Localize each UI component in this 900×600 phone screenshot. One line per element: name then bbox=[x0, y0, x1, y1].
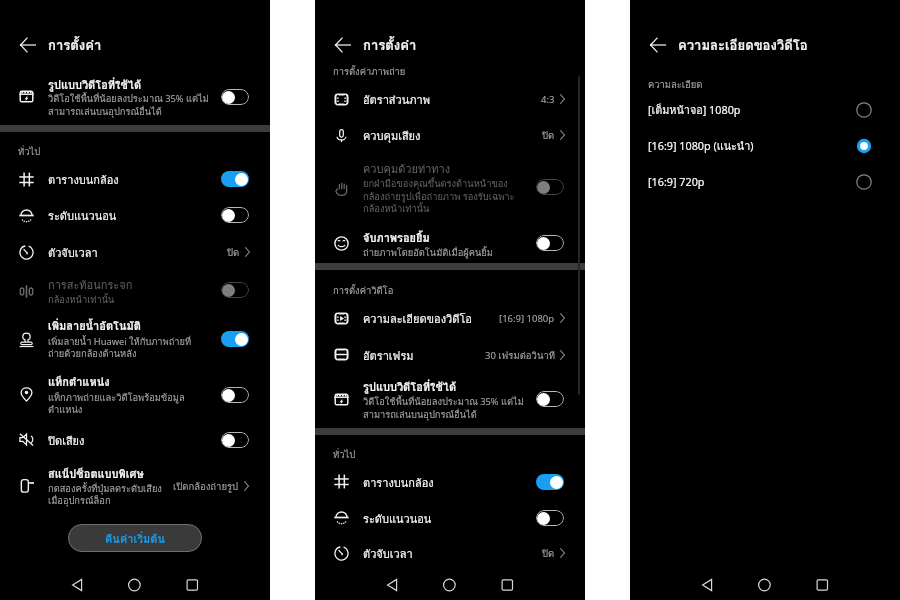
staticText: รูปแบบวิดีโอที่ใช้ได้ bbox=[48, 76, 142, 93]
staticText: ยกฝ่ามือของคุณขึ้นตรงด้านหน้าของ bbox=[363, 176, 508, 191]
staticText: ควบคุมด้วยท่าทาง bbox=[363, 160, 451, 177]
staticText: ตารางบนกล้อง bbox=[48, 171, 119, 188]
staticText: [16:9] 1080p bbox=[499, 312, 555, 325]
staticText: 30 เฟรมต่อวินาที bbox=[485, 348, 555, 363]
staticText: ปิด bbox=[227, 245, 240, 260]
staticText: [16:9] 720p bbox=[648, 174, 705, 189]
staticText: กล้องหน้าเท่านั้น bbox=[48, 292, 115, 307]
button[interactable]: Back bbox=[331, 33, 355, 57]
staticText: ควบคุมเสียง bbox=[363, 127, 421, 144]
button[interactable]: Recents bbox=[807, 565, 839, 600]
staticText: เพิ่มลายน้ำ Huawei ให้กับภาพถ่ายที่ bbox=[48, 334, 192, 349]
staticText: 4:3 bbox=[541, 93, 555, 106]
button[interactable]: Off bbox=[536, 510, 564, 526]
button[interactable]: Off bbox=[536, 179, 564, 195]
button[interactable]: Off bbox=[221, 89, 249, 105]
staticText: การตั้งค่าภาพถ่าย bbox=[333, 64, 406, 79]
staticText: คืนค่าเริ่มต้น bbox=[105, 530, 165, 547]
staticText: อัตราส่วนภาพ bbox=[363, 91, 430, 108]
button[interactable]: Back bbox=[692, 565, 724, 600]
button[interactable] bbox=[315, 337, 585, 372]
staticText: ความละเอียด bbox=[648, 77, 703, 92]
staticText: ปิด bbox=[542, 546, 555, 561]
button[interactable]: Back bbox=[62, 565, 94, 600]
staticText: แท็กภาพถ่ายและวิดีโอพร้อมข้อมูล bbox=[48, 390, 185, 405]
staticText: ถ่ายภาพโดยอัตโนมัติเมื่อผู้คนยิ้ม bbox=[363, 245, 493, 260]
staticText: การตั้งค่า bbox=[48, 35, 102, 56]
button[interactable] bbox=[315, 158, 585, 216]
button[interactable] bbox=[0, 272, 270, 310]
button[interactable]: On bbox=[221, 331, 249, 347]
staticText: เมื่ออุปกรณ์ล็อก bbox=[48, 493, 111, 508]
button[interactable] bbox=[0, 462, 270, 510]
button[interactable]: Home bbox=[119, 565, 151, 600]
button[interactable]: Home bbox=[434, 565, 466, 600]
staticText: การสะท้อนกระจก bbox=[48, 276, 133, 293]
button[interactable] bbox=[0, 315, 270, 363]
staticText: สแน็ปช็อตแบบพิเศษ bbox=[48, 465, 144, 482]
staticText: [เต็มหน้าจอ] 1080p bbox=[648, 102, 741, 119]
staticText: กล้องหน้าเท่านั้น bbox=[363, 201, 430, 216]
button[interactable] bbox=[315, 226, 585, 262]
staticText: เปิดกล้องถ่ายรูป bbox=[173, 479, 239, 494]
other: Back bbox=[335, 37, 351, 53]
button[interactable]: Recents bbox=[492, 565, 524, 600]
staticText: ปิด bbox=[542, 128, 555, 143]
button[interactable]: On bbox=[536, 474, 564, 490]
staticText: อัตราเฟรม bbox=[363, 347, 414, 364]
button[interactable]: Recents bbox=[177, 565, 209, 600]
staticText: ตัวจับเวลา bbox=[48, 244, 98, 261]
staticText: เพิ่มลายน้ำอัตโนมัติ bbox=[48, 317, 141, 334]
staticText: ระดับแนวนอน bbox=[363, 510, 432, 527]
button[interactable]: Home bbox=[749, 565, 781, 600]
button[interactable]: Off bbox=[536, 391, 564, 407]
button[interactable] bbox=[0, 198, 270, 233]
other: Back bbox=[20, 37, 36, 53]
staticText: รูปแบบวิดีโอที่ใช้ได้ bbox=[363, 378, 457, 395]
button[interactable] bbox=[315, 118, 585, 153]
staticText: ทั่วไป bbox=[18, 144, 41, 159]
button[interactable] bbox=[315, 500, 585, 535]
button[interactable] bbox=[630, 164, 900, 200]
staticText: ความละเอียดของวิดีโอ bbox=[678, 35, 808, 56]
button[interactable]: On bbox=[221, 171, 249, 187]
button[interactable] bbox=[0, 422, 270, 457]
button[interactable]: Back bbox=[377, 565, 409, 600]
button[interactable]: Off bbox=[221, 387, 249, 403]
staticText: กล้องถ่ายรูปเพื่อถ่ายภาพ รองรับเฉพาะ bbox=[363, 189, 515, 204]
button[interactable]: Off bbox=[221, 207, 249, 223]
button[interactable] bbox=[315, 82, 585, 117]
button[interactable] bbox=[0, 70, 270, 124]
button[interactable]: Off bbox=[221, 432, 249, 448]
staticText: การตั้งค่าวิดีโอ bbox=[333, 283, 394, 298]
staticText: ตำแหน่ง bbox=[48, 402, 83, 417]
staticText: ปิดเสียง bbox=[48, 432, 85, 449]
button[interactable] bbox=[0, 370, 270, 420]
staticText: จับภาพรอยยิ้ม bbox=[363, 229, 430, 246]
staticText: [16:9] 1080p (แนะนำ) bbox=[648, 138, 754, 155]
staticText: การตั้งค่า bbox=[363, 35, 417, 56]
staticText: ทั่วไป bbox=[333, 447, 356, 462]
button[interactable]: คืนค่าเริ่มต้น bbox=[68, 524, 202, 552]
staticText: วิดีโอใช้พื้นที่น้อยลงประมาณ 35% แต่ไม่ bbox=[363, 394, 524, 409]
button[interactable] bbox=[630, 92, 900, 128]
staticText: แท็กตำแหน่ง bbox=[48, 373, 110, 390]
staticText: สามารถเล่นบนอุปกรณ์อื่นได้ bbox=[48, 104, 162, 119]
button[interactable]: Back bbox=[16, 33, 40, 57]
button[interactable] bbox=[315, 373, 585, 425]
button[interactable]: Off bbox=[536, 235, 564, 251]
staticText: ความละเอียดของวิดีโอ bbox=[363, 310, 472, 327]
button[interactable]: Off bbox=[221, 282, 249, 298]
button[interactable] bbox=[315, 301, 585, 336]
staticText: ถ่ายด้วยกล้องด้านหลัง bbox=[48, 346, 137, 361]
button[interactable] bbox=[0, 234, 270, 269]
button[interactable] bbox=[315, 464, 585, 499]
button[interactable] bbox=[0, 162, 270, 197]
staticText: ตัวจับเวลา bbox=[363, 545, 413, 562]
staticText: ตารางบนกล้อง bbox=[363, 474, 434, 491]
other: Back bbox=[650, 37, 666, 53]
button[interactable] bbox=[315, 536, 585, 571]
button[interactable]: Back bbox=[646, 33, 670, 57]
button[interactable] bbox=[630, 128, 900, 164]
staticText: ระดับแนวนอน bbox=[48, 207, 117, 224]
